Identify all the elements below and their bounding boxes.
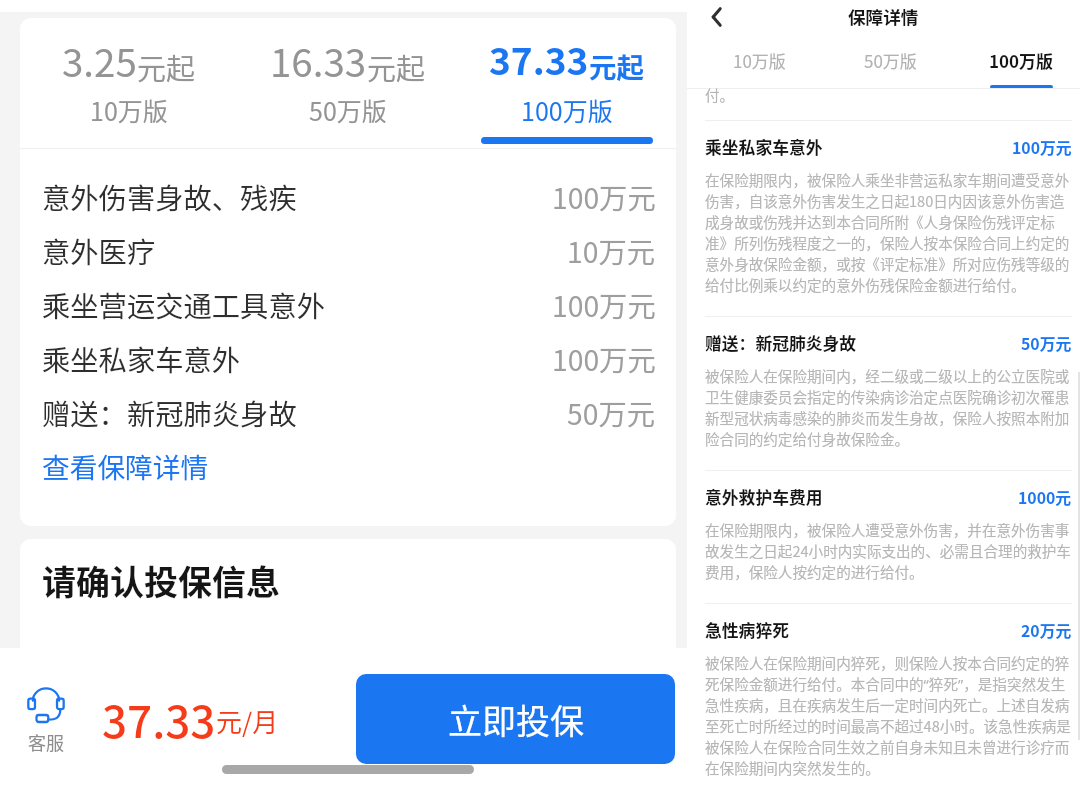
staticText: 乘坐私家车意外 [42, 338, 241, 379]
staticText: 付。 [705, 84, 735, 105]
staticText: 1000元 [1018, 486, 1072, 509]
staticText: 急性病猝死 [705, 618, 789, 642]
staticText: 50万元 [1021, 332, 1072, 355]
staticText: 3.25 [62, 32, 137, 88]
staticText: 意外医疗 [42, 230, 156, 271]
staticText: 立即投保 [448, 695, 584, 744]
staticText: 100万元 [552, 284, 656, 325]
staticText: 10万版 [90, 92, 168, 128]
staticText: 查看保障详情 [42, 446, 209, 486]
staticText: 在保险期限内，被保险人乘坐非营运私家车期间遭受意外伤害，自该意外伤害发生之日起1… [705, 169, 1072, 295]
staticText: 元起 [589, 46, 644, 86]
staticText: 保障详情 [848, 4, 919, 29]
staticText: 100万元 [552, 338, 656, 379]
button[interactable]: 查看保障详情 [42, 439, 209, 493]
staticText: 20万元 [1021, 619, 1072, 642]
staticText: 37.33 [102, 687, 216, 751]
staticText: 元/月 [216, 702, 279, 740]
staticText: 意外伤害身故、残疾 [42, 176, 297, 217]
button[interactable]: 客服 [24, 687, 68, 755]
staticText: 100万版 [989, 48, 1054, 73]
staticText: 元起 [367, 46, 426, 88]
staticText: 意外救护车费用 [705, 485, 823, 509]
button[interactable]: 37.33 [457, 18, 676, 148]
button[interactable]: 50万版 [825, 33, 956, 88]
staticText: 元起 [137, 46, 196, 88]
staticText: 37.33 [489, 32, 589, 86]
button[interactable]: 100万版 [956, 33, 1080, 88]
staticText: 请确认投保信息 [42, 556, 280, 605]
staticText: 赠送：新冠肺炎身故 [42, 392, 297, 433]
staticText: 100万版 [521, 92, 613, 128]
staticText: 10万元 [567, 230, 656, 271]
button[interactable]: 立即投保 [356, 674, 675, 764]
staticText: 被保险人在保险期间内，经二级或二级以上的公立医院或卫生健康委员会指定的传染病诊治… [705, 365, 1072, 449]
staticText: 100万元 [552, 176, 656, 217]
staticText: 乘坐私家车意外 [705, 135, 823, 159]
button[interactable]: 16.33 [238, 18, 457, 148]
staticText: 50万元 [567, 392, 656, 433]
staticText: 10万版 [733, 48, 786, 73]
button[interactable]: 返回 [701, 1, 733, 33]
staticText: 16.33 [270, 32, 367, 88]
staticText: 50万版 [309, 92, 387, 128]
staticText: 50万版 [864, 48, 917, 73]
button[interactable]: 3.25 [20, 18, 238, 148]
staticText: 客服 [28, 729, 64, 755]
staticText: 被保险人在保险期间内猝死，则保险人按本合同约定的猝死保险金额进行给付。本合同中的… [705, 652, 1072, 778]
staticText: 赠送：新冠肺炎身故 [705, 331, 857, 355]
button[interactable]: 10万版 [694, 33, 825, 88]
staticText: 乘坐营运交通工具意外 [42, 284, 325, 325]
other: 客服 [27, 687, 65, 722]
staticText: 100万元 [1012, 136, 1072, 159]
staticText: 在保险期限内，被保险人遭受意外伤害，并在意外伤害事故发生之日起24小时内实际支出… [705, 519, 1072, 582]
